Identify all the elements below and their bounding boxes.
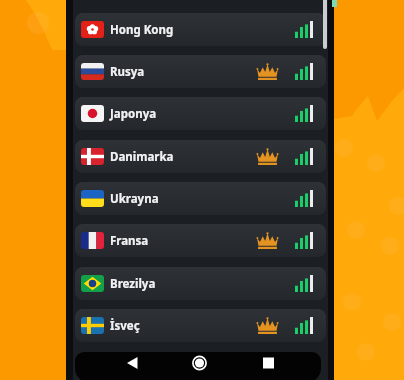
- staticText: Hong Kong: [110, 22, 174, 38]
- staticText: Brezilya: [110, 276, 156, 292]
- button[interactable]: Hong Kong: [75, 13, 326, 46]
- staticText: İsveç: [110, 318, 140, 334]
- button[interactable]: Fransa: [75, 224, 326, 257]
- staticText: Ukrayna: [110, 191, 159, 207]
- staticText: Rusya: [110, 64, 145, 80]
- button[interactable]: Brezilya: [75, 267, 326, 300]
- button[interactable]: Danimarka: [75, 140, 326, 173]
- button[interactable]: Ukrayna: [75, 182, 326, 215]
- button[interactable]: Japonya: [75, 97, 326, 130]
- staticText: Japonya: [110, 106, 157, 122]
- staticText: Fransa: [110, 233, 149, 249]
- button[interactable]: Rusya: [75, 55, 326, 88]
- staticText: Danimarka: [110, 149, 174, 165]
- button[interactable]: İsveç: [75, 309, 326, 342]
